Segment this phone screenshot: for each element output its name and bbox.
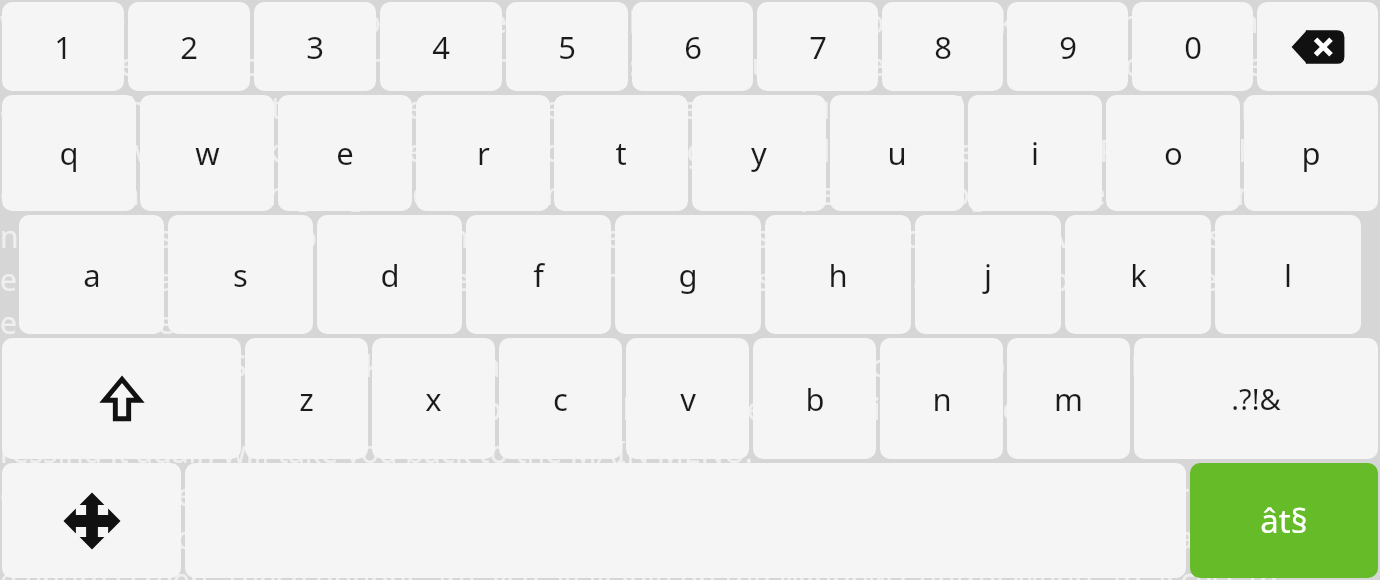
staticText: l — [1284, 254, 1292, 296]
button[interactable]: 9 — [1007, 2, 1128, 91]
button[interactable]: 5 — [506, 2, 628, 91]
staticText: ntries. Press the tab to move from entry… — [0, 216, 1288, 257]
button[interactable]: Backspace — [1257, 2, 1378, 91]
button[interactable]: d — [317, 215, 462, 334]
staticText: a — [83, 254, 101, 296]
button[interactable]: f — [466, 215, 611, 334]
button[interactable]: r — [416, 95, 550, 211]
button[interactable]: 1 — [2, 2, 124, 91]
staticText: t — [615, 132, 627, 174]
staticText: j — [984, 254, 992, 296]
button[interactable]: v — [626, 338, 749, 459]
staticText: enu. You may also use the mouse to selec… — [0, 259, 1338, 300]
button[interactable]: ât§ — [1190, 463, 1378, 578]
staticText: ressing it again will take you back to t… — [0, 431, 753, 472]
button[interactable]: s — [168, 215, 313, 334]
staticText: m — [1054, 378, 1083, 420]
button[interactable]: o — [1106, 95, 1240, 211]
staticText: 1 — [54, 26, 72, 68]
button[interactable]: m — [1007, 338, 1130, 459]
staticText: x — [425, 378, 442, 420]
staticText: ât§ — [1260, 498, 1308, 543]
button[interactable]: b — [753, 338, 876, 459]
staticText: 2 — [180, 26, 198, 68]
staticText: he escape key (ESC) will take you back t… — [0, 345, 1259, 386]
staticText: g — [678, 254, 698, 296]
button[interactable]: Shift — [2, 338, 241, 459]
staticText: u — [887, 132, 907, 174]
staticText: rinting a window. You may press (F12) to… — [0, 517, 1301, 558]
staticText: alues in the screen touch Accept to save… — [0, 87, 1312, 128]
staticText: i — [1031, 132, 1039, 174]
staticText: e submenu for the highlighted selection.… — [0, 173, 1302, 214]
button[interactable]: k — [1065, 215, 1211, 334]
button[interactable]: n — [880, 338, 1003, 459]
button[interactable]: 2 — [128, 2, 250, 91]
button[interactable]: 0 — [1132, 2, 1253, 91]
button[interactable]: a — [19, 215, 164, 334]
button[interactable]: 6 — [632, 2, 753, 91]
staticText: q — [59, 132, 79, 174]
button[interactable]: 8 — [882, 2, 1003, 91]
staticText: n — [932, 378, 952, 420]
button[interactable]: t — [554, 95, 688, 211]
staticText: o — [1164, 132, 1183, 174]
staticText: e — [336, 132, 354, 174]
staticText: 4 — [432, 26, 450, 68]
button[interactable]: u — [830, 95, 964, 211]
button[interactable]: w — [140, 95, 274, 211]
button[interactable]: l — [1215, 215, 1361, 334]
staticText: z — [299, 378, 314, 420]
button[interactable]: j — [915, 215, 1061, 334]
staticText: or your convenience, you may print any o… — [0, 474, 1282, 515]
button[interactable]: e — [278, 95, 412, 211]
staticText: 7 — [809, 26, 827, 68]
staticText: will either appear on the touchscreen or… — [0, 1, 1380, 42]
staticText: p and down arrow keys on the keyboard to… — [0, 130, 1347, 171]
staticText: e entire screen. These options are also … — [0, 559, 1278, 580]
staticText: f — [533, 254, 544, 296]
staticText: .?!& — [1231, 379, 1281, 418]
button[interactable]: p — [1244, 95, 1378, 211]
staticText: ickness on 2 inch nominal lumber, pressi… — [0, 388, 1289, 429]
staticText: 9 — [1059, 26, 1077, 68]
button[interactable]: g — [615, 215, 761, 334]
button[interactable]: h — [765, 215, 911, 334]
button[interactable]: x — [372, 338, 495, 459]
staticText: r — [477, 132, 490, 174]
staticText: he simplest way to access menu items is … — [0, 44, 1317, 85]
button[interactable]: 4 — [380, 2, 502, 91]
button[interactable]: 7 — [757, 2, 878, 91]
button[interactable]: .?!& — [1134, 338, 1378, 459]
staticText: 0 — [1184, 26, 1202, 68]
staticText: 8 — [934, 26, 952, 68]
staticText: 6 — [684, 26, 702, 68]
staticText: 5 — [558, 26, 576, 68]
staticText: v — [680, 378, 696, 420]
staticText: k — [1130, 254, 1147, 296]
button[interactable]: Move keyboard — [2, 463, 181, 578]
staticText: s — [233, 254, 248, 296]
staticText: y — [751, 132, 767, 174]
button[interactable]: z — [245, 338, 368, 459]
button[interactable]: q — [2, 95, 136, 211]
staticText: e left mouse button. — [0, 302, 286, 343]
staticText: p — [1301, 132, 1321, 174]
staticText: b — [805, 378, 825, 420]
button[interactable]: y — [692, 95, 826, 211]
button[interactable]: c — [499, 338, 622, 459]
staticText: w — [195, 132, 220, 174]
button[interactable]: i — [968, 95, 1102, 211]
staticText: 3 — [306, 26, 324, 68]
staticText: d — [380, 254, 400, 296]
staticText: c — [553, 378, 568, 420]
staticText: h — [828, 254, 848, 296]
button[interactable]: 3 — [254, 2, 376, 91]
